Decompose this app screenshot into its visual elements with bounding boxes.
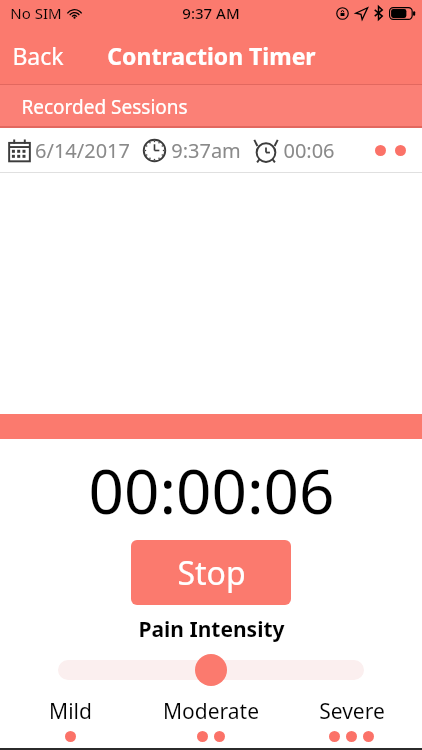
button[interactable]: Mild	[0, 697, 140, 742]
staticText: Mild	[49, 697, 92, 726]
staticText: Stop	[177, 551, 246, 595]
button[interactable]: Recorded Sessions	[0, 85, 422, 128]
staticText: Contraction Timer	[107, 40, 316, 71]
staticText: Severe	[319, 697, 385, 726]
button[interactable]: 6/14/2017	[0, 128, 422, 173]
button[interactable]: Severe	[281, 697, 422, 742]
staticText: Recorded Sessions	[21, 94, 188, 120]
staticText: 9:37 AM	[182, 3, 240, 23]
staticText: 00:06	[283, 137, 335, 164]
staticText: 9:37am	[171, 137, 241, 164]
staticText: 00:00:06	[88, 448, 335, 532]
button[interactable]: Stop	[131, 540, 291, 605]
button[interactable]: Back	[0, 34, 78, 77]
staticText: Back	[12, 40, 64, 71]
staticText: Pain Intensity	[138, 615, 285, 644]
staticText: No SIM	[10, 3, 62, 23]
staticText: Moderate	[163, 697, 259, 726]
button[interactable]: Moderate	[140, 697, 281, 742]
staticText: 6/14/2017	[35, 137, 130, 164]
button[interactable]: Pain intensity slider	[0, 653, 422, 687]
